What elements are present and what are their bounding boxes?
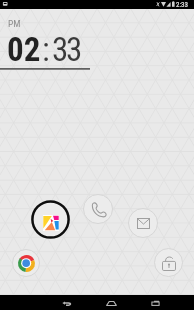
staticText: 2:33 (176, 1, 189, 9)
button[interactable]: Unlock (154, 248, 183, 277)
staticText: 33 (52, 30, 81, 69)
button[interactable]: Back (53, 295, 81, 310)
button[interactable]: Home (97, 295, 125, 310)
button[interactable]: Chrome (12, 249, 40, 277)
button[interactable]: Recent apps (141, 295, 169, 310)
button[interactable]: Phone (83, 194, 113, 224)
button[interactable]: Photos (31, 200, 70, 239)
staticText: 02 (7, 30, 41, 69)
staticText: : (42, 30, 50, 69)
button[interactable]: Email (128, 208, 158, 238)
staticText: PM (8, 18, 21, 29)
